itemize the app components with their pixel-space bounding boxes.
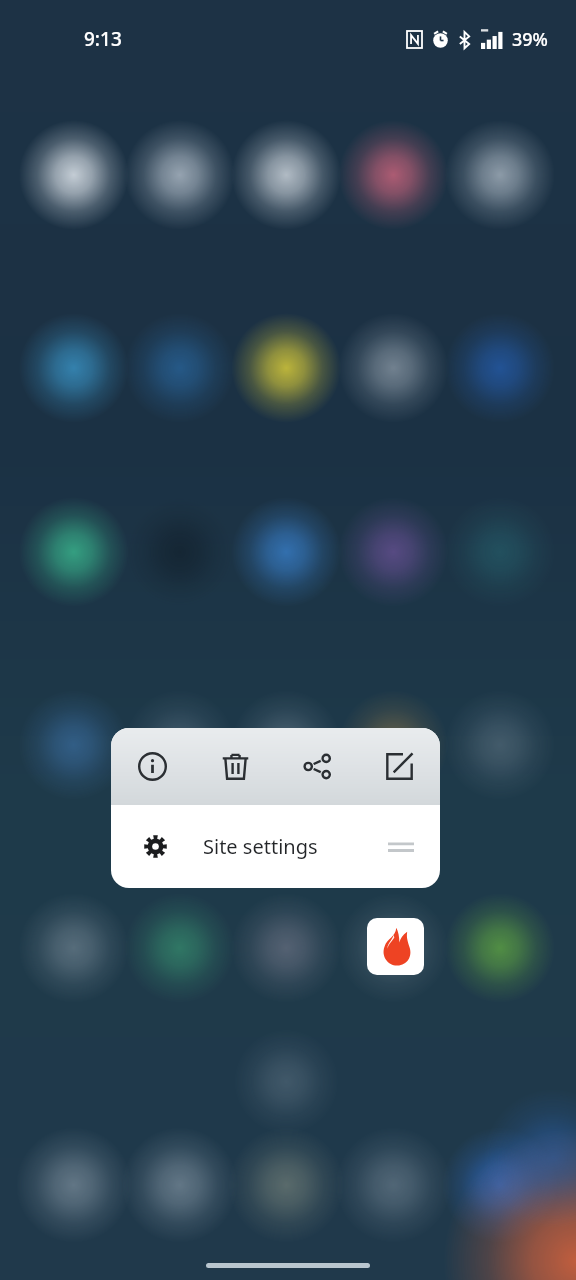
staticText: Site settings [203,833,318,860]
button[interactable]: Share [276,728,358,805]
other: Reorder [388,839,414,855]
button[interactable]: Delete [194,728,276,805]
staticText: 9:13 [84,26,122,52]
button[interactable]: Edit shortcut [358,728,440,805]
staticText: 39% [512,27,548,52]
button[interactable]: Page info [111,728,194,805]
button[interactable]: Site settings [111,805,440,888]
button[interactable]: Tinder app icon [367,918,424,975]
